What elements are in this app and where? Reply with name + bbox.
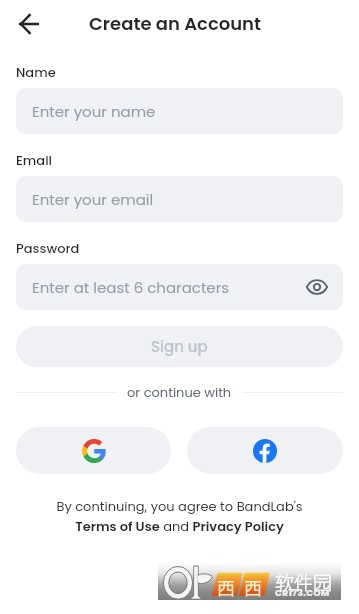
staticText: 软件园 bbox=[275, 568, 333, 596]
button[interactable]: Enter your email bbox=[16, 176, 343, 222]
staticText: or continue with bbox=[127, 383, 232, 401]
button[interactable]: Show password bbox=[303, 273, 331, 301]
staticText: Enter your name bbox=[32, 101, 156, 122]
staticText: CR173.COM bbox=[275, 587, 330, 600]
staticText: Create an Account bbox=[89, 11, 261, 36]
button[interactable]: Enter your name bbox=[16, 88, 343, 134]
staticText: Sign up bbox=[151, 336, 208, 357]
staticText: Enter your email bbox=[32, 189, 154, 210]
staticText: 西 bbox=[244, 574, 262, 600]
button[interactable]: Back bbox=[10, 6, 46, 42]
button[interactable]: Sign up bbox=[16, 326, 343, 367]
staticText: Name bbox=[16, 63, 56, 81]
staticText: By continuing, you agree to BandLab's Te… bbox=[16, 497, 343, 535]
button[interactable]: Continue with Facebook bbox=[187, 427, 343, 474]
staticText: 西 bbox=[217, 574, 235, 600]
staticText: Password bbox=[16, 239, 80, 257]
button[interactable]: Continue with Google bbox=[16, 427, 171, 474]
staticText: Email bbox=[16, 151, 52, 169]
staticText: Enter at least 6 characters bbox=[32, 277, 230, 298]
button[interactable]: Enter at least 6 characters bbox=[16, 264, 343, 310]
